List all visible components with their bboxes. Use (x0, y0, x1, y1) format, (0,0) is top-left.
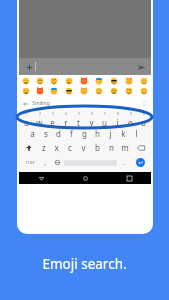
staticText: f (70, 128, 73, 139)
button[interactable]: 5 (72, 112, 85, 126)
button[interactable]: a (26, 126, 39, 140)
staticText: 8 (117, 112, 119, 116)
staticText: c (68, 142, 72, 153)
staticText: j (109, 128, 112, 139)
button[interactable]: Emoji (76, 76, 91, 86)
button[interactable]: Recents (107, 172, 151, 184)
button[interactable]: Emoji (136, 76, 151, 86)
button[interactable]: Smiling (19, 97, 151, 110)
staticText: e (50, 117, 55, 126)
button[interactable]: Enter (130, 155, 150, 170)
staticText: x (54, 142, 59, 153)
staticText: o (128, 117, 133, 126)
staticText: p (141, 117, 146, 126)
button[interactable]: Emoji (91, 76, 106, 86)
staticText: 9 (130, 112, 132, 116)
staticText: m (121, 142, 129, 153)
staticText: g (82, 128, 87, 139)
button[interactable]: Shift (20, 140, 37, 155)
button[interactable]: Emoji (106, 76, 121, 86)
button[interactable]: z (37, 140, 50, 155)
button[interactable]: v (76, 140, 90, 155)
staticText: 1 (26, 112, 28, 116)
button[interactable]: Emoji (61, 76, 76, 86)
button[interactable]: 7 (98, 112, 111, 126)
button[interactable]: ?123 (20, 155, 39, 170)
staticText: 0 (143, 112, 145, 116)
staticText: u (102, 117, 107, 126)
staticText: y (89, 117, 94, 126)
staticText: s (44, 128, 48, 139)
button[interactable]: k (117, 126, 130, 140)
staticText: 5 (78, 112, 80, 116)
button[interactable]: j (104, 126, 117, 140)
button[interactable]: Emoji (47, 86, 61, 96)
button[interactable]: h (91, 126, 104, 140)
button[interactable]: Emoji (61, 86, 76, 96)
button[interactable]: Emoji (19, 86, 33, 96)
staticText: k (121, 128, 126, 139)
staticText: b (95, 142, 100, 153)
staticText: l (135, 128, 138, 139)
button[interactable]: 1 (20, 112, 33, 126)
button[interactable]: Emoji (106, 86, 121, 96)
staticText: w (36, 117, 43, 126)
button[interactable]: g (78, 126, 91, 140)
button[interactable]: Add attachment (24, 62, 34, 72)
button[interactable]: Emoji (33, 86, 47, 96)
button[interactable]: 6 (85, 112, 98, 126)
button[interactable]: Comma (39, 155, 51, 170)
button[interactable]: f (65, 126, 78, 140)
button[interactable]: m (118, 140, 132, 155)
staticText: h (95, 128, 100, 139)
button[interactable]: 0 (137, 112, 150, 126)
button[interactable]: Period (118, 155, 130, 170)
staticText: Emoji search. (42, 255, 127, 273)
staticText: 6 (91, 112, 93, 116)
staticText: d (56, 128, 61, 139)
staticText: q (24, 117, 29, 126)
button[interactable]: Emoji (136, 86, 151, 96)
staticText: Smiling (32, 100, 50, 107)
button[interactable]: 8 (111, 112, 124, 126)
staticText: n (109, 142, 114, 153)
button[interactable]: 3 (46, 112, 59, 126)
button[interactable]: Emoji (19, 76, 33, 86)
button[interactable]: Home (63, 172, 107, 184)
button[interactable]: c (63, 140, 76, 155)
button[interactable]: Emoji (91, 86, 106, 96)
button[interactable]: Emoji (33, 76, 47, 86)
staticText: z (42, 142, 46, 153)
staticText: i (116, 117, 119, 126)
staticText: v (81, 142, 86, 153)
staticText: 2 (39, 112, 41, 116)
button[interactable]: Emoji (47, 76, 61, 86)
button[interactable]: b (90, 140, 104, 155)
button[interactable]: n (104, 140, 118, 155)
button[interactable]: 9 (124, 112, 137, 126)
staticText: ?123 (25, 160, 35, 166)
button[interactable]: Emoji (121, 76, 136, 86)
staticText: 7 (104, 112, 106, 116)
staticText: . (123, 158, 125, 167)
button[interactable]: Backspace (132, 140, 150, 155)
staticText: 3 (52, 112, 54, 116)
staticText: , (44, 158, 46, 167)
button[interactable]: l (130, 126, 143, 140)
button[interactable]: Emoji (121, 86, 136, 96)
button[interactable]: s (39, 126, 52, 140)
staticText: 4 (65, 112, 67, 116)
button[interactable]: 2 (33, 112, 46, 126)
button[interactable]: x (50, 140, 63, 155)
staticText: r (64, 117, 68, 126)
staticText: a (30, 128, 35, 139)
button[interactable]: Send (135, 61, 147, 73)
button[interactable]: d (52, 126, 65, 140)
staticText: t (77, 117, 80, 126)
button[interactable]: 4 (59, 112, 72, 126)
button[interactable]: Language (51, 155, 63, 170)
button[interactable]: Emoji (76, 86, 91, 96)
button[interactable]: Back (19, 172, 63, 184)
